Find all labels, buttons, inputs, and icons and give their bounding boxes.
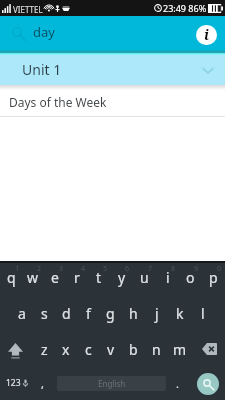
button[interactable]: c	[77, 331, 99, 367]
button[interactable]: k	[168, 295, 191, 331]
staticText: k	[176, 304, 184, 323]
staticText: g	[106, 304, 115, 323]
staticText: 23:49 86%	[163, 2, 207, 14]
staticText: d	[62, 304, 71, 323]
button[interactable]: Search	[10, 25, 26, 41]
button[interactable]: m	[168, 331, 191, 367]
staticText: 2	[37, 264, 42, 274]
button[interactable]: n	[145, 331, 168, 367]
staticText: VIETTEL	[13, 4, 43, 15]
staticText: a	[18, 304, 26, 323]
staticText: n	[152, 340, 161, 359]
staticText: f	[86, 304, 91, 323]
staticText: m	[173, 340, 187, 359]
staticText: j	[155, 304, 159, 323]
staticText: 7	[148, 264, 153, 274]
staticText: l	[201, 304, 205, 323]
button[interactable]: v	[99, 331, 122, 367]
button[interactable]: d	[55, 295, 77, 331]
staticText: 5	[103, 264, 108, 274]
button[interactable]: 8	[156, 263, 179, 295]
button[interactable]: Days of the Week	[0, 90, 225, 117]
staticText: .	[176, 376, 179, 391]
staticText: x	[62, 340, 70, 359]
staticText: h	[129, 304, 138, 323]
button[interactable]: l	[191, 295, 214, 331]
staticText: i	[166, 268, 170, 287]
staticText: 8	[171, 264, 176, 274]
staticText: e	[51, 268, 59, 287]
button[interactable]: z	[33, 331, 55, 367]
button[interactable]: g	[99, 295, 122, 331]
staticText: 1	[15, 264, 20, 274]
staticText: ,	[41, 376, 44, 391]
staticText: v	[107, 340, 115, 359]
button[interactable]: Shift	[0, 331, 33, 367]
staticText: u	[140, 268, 149, 287]
staticText: y	[118, 268, 126, 287]
staticText: Unit 1	[22, 60, 62, 79]
staticText: t	[96, 268, 102, 287]
staticText: English	[98, 378, 126, 389]
button[interactable]: English	[57, 376, 166, 391]
button[interactable]: .	[163, 367, 191, 400]
staticText: 3	[59, 264, 64, 274]
staticText: r	[74, 268, 80, 287]
button[interactable]: Backspace	[191, 331, 225, 367]
staticText: 4	[81, 264, 86, 274]
button[interactable]: 0	[202, 263, 225, 295]
staticText: q	[7, 268, 16, 287]
staticText: b	[129, 340, 138, 359]
button[interactable]: a	[11, 295, 33, 331]
button[interactable]: 2	[22, 263, 44, 295]
button[interactable]: 1	[0, 263, 22, 295]
button[interactable]: 3	[44, 263, 66, 295]
staticText: 123	[6, 377, 21, 389]
button[interactable]: Info	[196, 25, 217, 45]
staticText: day	[33, 23, 55, 41]
button[interactable]: Search	[191, 367, 225, 400]
other: Expand	[200, 62, 216, 78]
staticText: 6	[125, 264, 130, 274]
staticText: c	[85, 340, 92, 359]
staticText: 9	[194, 264, 199, 274]
button[interactable]: j	[145, 295, 168, 331]
button[interactable]: f	[77, 295, 99, 331]
button[interactable]: 7	[133, 263, 156, 295]
staticText: w	[27, 268, 39, 287]
button[interactable]: Unit 1	[0, 55, 225, 85]
button[interactable]: b	[122, 331, 145, 367]
button[interactable]: 123	[0, 367, 26, 400]
staticText: p	[209, 268, 218, 287]
staticText: s	[41, 304, 48, 323]
button[interactable]: h	[122, 295, 145, 331]
staticText: i	[204, 25, 209, 44]
button[interactable]: 5	[88, 263, 110, 295]
button[interactable]: s	[33, 295, 55, 331]
button[interactable]: x	[55, 331, 77, 367]
button[interactable]: 6	[110, 263, 133, 295]
button[interactable]: ,	[34, 367, 54, 400]
staticText: Days of the Week	[9, 94, 107, 110]
staticText: o	[186, 268, 195, 287]
button[interactable]: 9	[179, 263, 202, 295]
button[interactable]: Voice input	[26, 367, 34, 400]
staticText: z	[41, 340, 48, 359]
button[interactable]: 4	[66, 263, 88, 295]
staticText: 0	[217, 264, 222, 274]
